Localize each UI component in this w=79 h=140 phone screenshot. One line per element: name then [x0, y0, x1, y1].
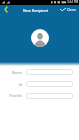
staticText: Name: [11, 70, 22, 75]
button[interactable]: [26, 81, 73, 87]
button[interactable]: [26, 69, 73, 75]
staticText: New Recipient: [23, 8, 49, 13]
staticText: 3:24 PM: [67, 0, 79, 4]
button[interactable]: Back: [1, 5, 10, 14]
button[interactable]: Profile photo: [31, 29, 49, 47]
staticText: Id: [18, 82, 22, 87]
button[interactable]: [26, 93, 73, 99]
staticText: Phone No: [9, 94, 22, 98]
button[interactable]: Done: [60, 5, 77, 14]
staticText: Done: [67, 7, 77, 12]
